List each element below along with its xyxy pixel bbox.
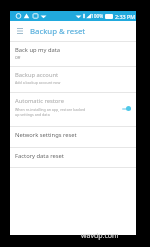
staticText: Back up my data	[15, 46, 61, 54]
button[interactable]: Factory data reset	[10, 148, 136, 167]
button[interactable]: Automatic restore	[10, 93, 136, 126]
staticText: wavdp.com	[81, 231, 119, 241]
staticText: Automatic restore	[15, 97, 64, 105]
button[interactable]: Navigation menu	[13, 24, 27, 38]
staticText: Off	[15, 55, 21, 60]
button[interactable]: Backup account	[10, 67, 136, 92]
staticText: When re-installing an app, restore backe…	[15, 107, 86, 117]
staticText: Network settings reset	[15, 131, 77, 139]
button[interactable]: Back up my data	[10, 42, 136, 66]
staticText: 2:33 PM	[115, 13, 136, 20]
staticText: Add a backup account now	[15, 80, 61, 85]
staticText: Factory data reset	[15, 152, 64, 160]
staticText: 100%	[91, 13, 104, 20]
staticText: Backup account	[15, 71, 59, 79]
staticText: Backup & reset	[30, 26, 86, 37]
button[interactable]: Network settings reset	[10, 127, 136, 147]
